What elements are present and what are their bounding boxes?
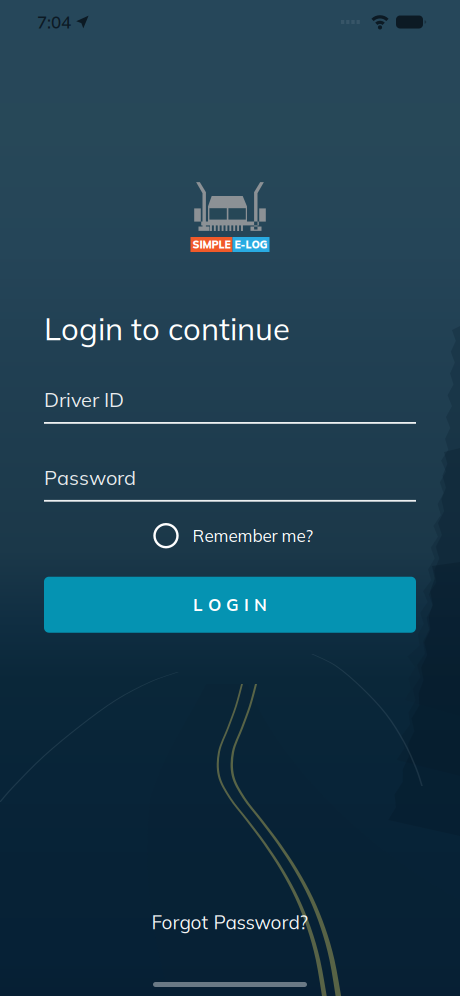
staticText: Remember me? — [192, 525, 313, 546]
staticText: E-LOG — [234, 238, 267, 251]
button[interactable]: Remember me? — [154, 519, 313, 553]
button[interactable]: L O G I N — [44, 577, 416, 633]
staticText: SIMPLE — [192, 238, 230, 251]
staticText: Login to continue — [44, 309, 290, 348]
staticText: L O G I N — [193, 594, 267, 615]
staticText: Driver ID — [44, 387, 124, 412]
staticText: 7:04 — [37, 11, 71, 33]
staticText: Forgot Password? — [151, 910, 308, 934]
button[interactable]: Forgot Password? — [151, 910, 308, 934]
staticText: Password — [44, 465, 136, 490]
